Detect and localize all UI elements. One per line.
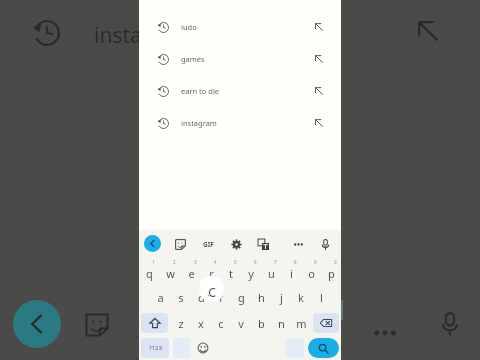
staticText: games bbox=[181, 54, 205, 64]
button[interactable]: 8 bbox=[281, 258, 301, 284]
button[interactable]: s bbox=[171, 284, 191, 310]
button[interactable]: Translate bbox=[254, 235, 272, 253]
staticText: z bbox=[178, 316, 184, 331]
staticText: instagram bbox=[181, 118, 217, 128]
staticText: b bbox=[258, 316, 265, 331]
staticText: 5 bbox=[234, 259, 237, 265]
staticText: g bbox=[238, 290, 245, 305]
staticText: p bbox=[328, 266, 335, 281]
staticText: 8 bbox=[294, 259, 297, 265]
staticText: c bbox=[218, 316, 224, 331]
staticText: 6 bbox=[254, 259, 257, 265]
button[interactable]: Search bbox=[308, 338, 339, 358]
staticText: insta bbox=[94, 21, 142, 50]
button[interactable]: ?123 bbox=[141, 338, 169, 358]
staticText: ludo bbox=[181, 22, 197, 32]
button[interactable]: 5 bbox=[221, 258, 241, 284]
button[interactable]: 1 bbox=[139, 258, 160, 284]
button[interactable]: h bbox=[251, 284, 271, 310]
staticText: s bbox=[178, 290, 184, 305]
button[interactable]: Settings bbox=[227, 235, 245, 253]
button[interactable]: f bbox=[211, 284, 231, 310]
staticText: i bbox=[290, 266, 293, 281]
button[interactable]: b bbox=[251, 310, 271, 336]
staticText: h bbox=[258, 290, 265, 305]
button[interactable]: Shift bbox=[141, 313, 168, 333]
staticText: f bbox=[219, 290, 223, 305]
button[interactable]: 3 bbox=[181, 258, 201, 284]
button[interactable]: d bbox=[191, 284, 211, 310]
button[interactable]: k bbox=[291, 284, 311, 310]
staticText: e bbox=[188, 266, 195, 281]
staticText: 7 bbox=[274, 259, 277, 265]
button[interactable]: Insert instagram bbox=[312, 116, 326, 130]
staticText: j bbox=[280, 290, 283, 305]
staticText: GIF bbox=[203, 240, 214, 249]
staticText: C bbox=[208, 284, 216, 300]
staticText: v bbox=[238, 316, 244, 331]
staticText: u bbox=[268, 266, 275, 281]
staticText: 9 bbox=[314, 259, 317, 265]
button[interactable]: n bbox=[271, 310, 291, 336]
button[interactable]: games bbox=[139, 43, 341, 75]
staticText: q bbox=[146, 266, 153, 281]
button[interactable]: earn to die bbox=[139, 75, 341, 107]
button[interactable]: Insert earn to die bbox=[312, 84, 326, 98]
button[interactable]: a bbox=[150, 284, 171, 310]
staticText: l bbox=[320, 290, 323, 305]
button[interactable]: Stickers bbox=[171, 235, 189, 253]
staticText: ?123 bbox=[149, 344, 162, 352]
staticText: earn to die bbox=[181, 86, 220, 96]
button[interactable]: z bbox=[170, 310, 191, 336]
staticText: 4 bbox=[214, 259, 217, 265]
staticText: d bbox=[198, 290, 205, 305]
button[interactable]: GIF bbox=[198, 237, 218, 251]
button[interactable]: instagram bbox=[139, 107, 341, 139]
button[interactable]: ludo bbox=[139, 11, 341, 43]
button[interactable]: Backspace bbox=[313, 313, 339, 333]
button[interactable]: More options bbox=[289, 235, 307, 253]
button[interactable]: l bbox=[311, 284, 331, 310]
button[interactable]: Close toolbar bbox=[144, 235, 161, 252]
button[interactable]: g bbox=[231, 284, 251, 310]
staticText: o bbox=[308, 266, 315, 281]
button[interactable]: 0 bbox=[321, 258, 341, 284]
button[interactable]: Insert ludo bbox=[312, 20, 326, 34]
button[interactable]: v bbox=[231, 310, 251, 336]
staticText: t bbox=[229, 266, 233, 281]
button[interactable]: Comma bbox=[173, 338, 190, 358]
staticText: n bbox=[278, 316, 285, 331]
staticText: m bbox=[296, 316, 307, 331]
staticText: 0 bbox=[334, 259, 337, 265]
button[interactable]: Insert games bbox=[312, 52, 326, 66]
staticText: a bbox=[157, 290, 164, 305]
button[interactable]: 7 bbox=[261, 258, 281, 284]
staticText: k bbox=[298, 290, 304, 305]
button[interactable]: c bbox=[211, 310, 231, 336]
button[interactable]: j bbox=[271, 284, 291, 310]
button[interactable]: 6 bbox=[241, 258, 261, 284]
staticText: 2 bbox=[173, 259, 176, 265]
staticText: x bbox=[198, 316, 204, 331]
staticText: w bbox=[166, 266, 175, 281]
staticText: 1 bbox=[152, 259, 155, 265]
button[interactable]: 9 bbox=[301, 258, 321, 284]
button[interactable]: Emoji bbox=[192, 336, 214, 360]
button[interactable]: 4 bbox=[201, 258, 221, 284]
staticText: y bbox=[248, 266, 254, 281]
button[interactable]: 2 bbox=[160, 258, 181, 284]
button[interactable]: Voice input bbox=[316, 235, 334, 253]
staticText: 3 bbox=[194, 259, 197, 265]
staticText: r bbox=[209, 266, 214, 281]
button[interactable]: x bbox=[191, 310, 211, 336]
button[interactable]: m bbox=[291, 310, 311, 336]
